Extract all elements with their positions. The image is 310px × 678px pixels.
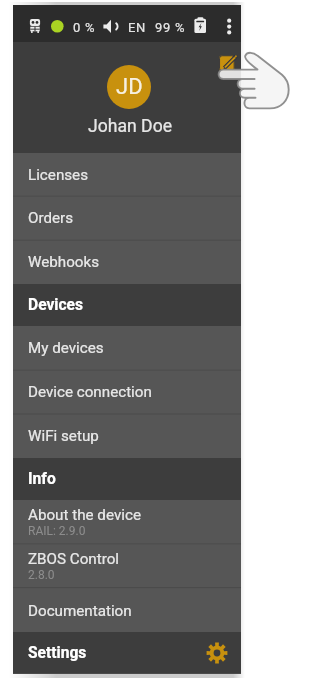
staticText: 99 % bbox=[155, 20, 186, 35]
staticText: ZBOS Control bbox=[28, 550, 120, 568]
button[interactable]: ZBOS Control bbox=[13, 544, 241, 588]
button[interactable]: Info bbox=[13, 458, 241, 500]
staticText: 2.8.0 bbox=[28, 568, 55, 582]
button[interactable]: JD bbox=[107, 65, 151, 109]
staticText: Documentation bbox=[28, 602, 132, 620]
staticText: JD bbox=[116, 74, 143, 100]
staticText: Info bbox=[28, 470, 56, 488]
staticText: Devices bbox=[28, 296, 84, 314]
button[interactable]: Webhooks bbox=[13, 240, 241, 284]
staticText: Johan Doe bbox=[88, 116, 172, 137]
button[interactable]: Devices bbox=[13, 284, 241, 326]
button[interactable]: Settings bbox=[13, 632, 241, 673]
staticText: WiFi setup bbox=[28, 427, 99, 445]
staticText: My devices bbox=[28, 339, 104, 357]
staticText: About the device bbox=[28, 506, 141, 524]
staticText: Licenses bbox=[28, 166, 88, 184]
staticText: Webhooks bbox=[28, 253, 100, 271]
button[interactable]: Device connection bbox=[13, 370, 241, 414]
button[interactable]: Orders bbox=[13, 196, 241, 240]
staticText: Settings bbox=[28, 644, 87, 662]
staticText: RAIL: 2.9.0 bbox=[28, 524, 86, 538]
staticText: EN bbox=[128, 20, 147, 35]
button[interactable]: Licenses bbox=[13, 153, 241, 197]
button[interactable]: My devices bbox=[13, 326, 241, 370]
staticText: Device connection bbox=[28, 383, 152, 401]
button[interactable]: Edit profile bbox=[217, 53, 240, 76]
button[interactable]: About the device bbox=[13, 500, 241, 544]
staticText: Orders bbox=[28, 209, 74, 227]
button[interactable]: Documentation bbox=[13, 588, 241, 633]
button[interactable]: WiFi setup bbox=[13, 414, 241, 458]
staticText: 0 % bbox=[73, 20, 96, 35]
other: Settings bbox=[206, 642, 228, 664]
